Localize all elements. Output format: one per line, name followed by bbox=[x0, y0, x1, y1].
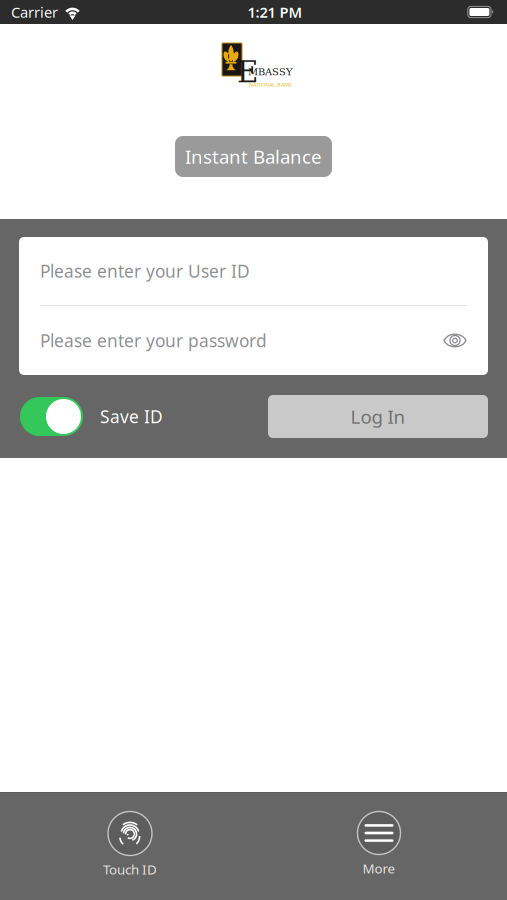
staticText: Log In bbox=[350, 404, 405, 429]
staticText: Touch ID bbox=[103, 860, 157, 878]
button[interactable]: More bbox=[329, 792, 429, 900]
staticText: 1:21 PM bbox=[247, 2, 302, 22]
staticText: More bbox=[362, 859, 395, 877]
staticText: Instant Balance bbox=[185, 144, 322, 169]
staticText: MBASSY bbox=[248, 66, 293, 77]
staticText: Please enter your User ID bbox=[40, 259, 250, 282]
staticText: Save ID bbox=[100, 405, 163, 428]
button[interactable] bbox=[20, 397, 83, 436]
button[interactable]: Touch ID bbox=[80, 792, 180, 900]
staticText: E bbox=[237, 55, 258, 89]
button[interactable]: Please enter your password bbox=[19, 306, 488, 375]
button[interactable]: Please enter your User ID bbox=[19, 237, 488, 305]
button[interactable]: Instant Balance bbox=[175, 136, 332, 177]
staticText: Carrier bbox=[11, 2, 58, 22]
button[interactable]: Log In bbox=[268, 395, 488, 438]
staticText: Please enter your password bbox=[40, 329, 267, 352]
staticText: NATIONAL BANK bbox=[249, 82, 292, 88]
